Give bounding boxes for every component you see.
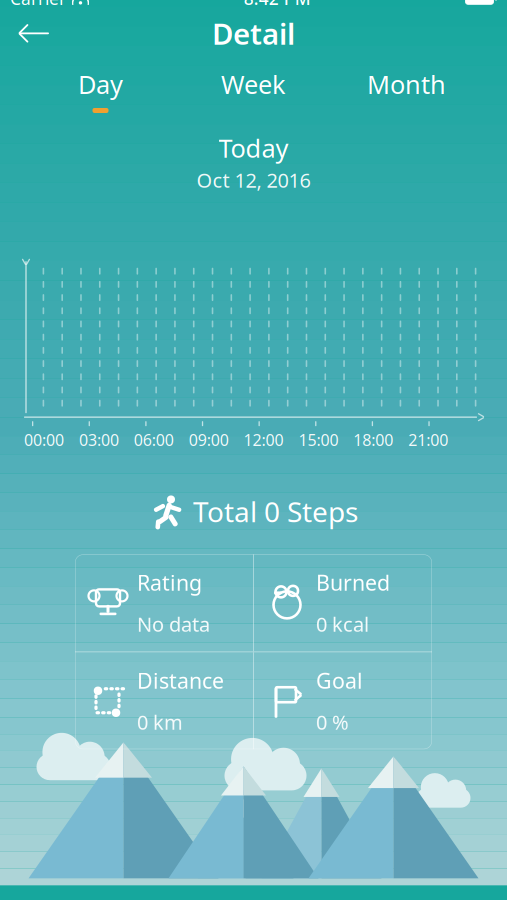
button[interactable]: Burned [254,554,432,651]
staticText: Week [221,67,286,101]
button[interactable]: Month [330,63,483,117]
staticText: 18:00 [353,429,393,450]
button[interactable]: Back [0,12,54,54]
button[interactable]: Goal [254,652,432,749]
staticText: 21:00 [408,429,448,450]
staticText: Distance [137,666,224,695]
staticText: 09:00 [189,429,229,450]
staticText: Month [367,67,446,101]
staticText: 06:00 [134,429,174,450]
staticText: 0 km [137,709,183,735]
staticText: 03:00 [79,429,119,450]
staticText: Goal [316,666,363,695]
staticText: No data [137,611,210,637]
staticText: 12:00 [243,429,283,450]
staticText: 0 kcal [316,611,369,637]
staticText: 15:00 [298,429,338,450]
staticText: Rating [137,568,202,597]
staticText: Burned [316,568,390,597]
staticText: Day [78,67,123,101]
staticText: 8:42 PM [244,0,311,10]
staticText: 0 % [316,709,349,735]
staticText: Carrier [10,0,66,10]
staticText: 00:00 [24,429,64,450]
button[interactable]: Rating [75,554,253,651]
staticText: Today [218,131,288,165]
button[interactable]: Distance [75,652,253,749]
staticText: Detail [212,14,295,53]
button[interactable]: Week [177,63,330,117]
staticText: Total 0 Steps [193,493,358,530]
staticText: Oct 12, 2016 [196,167,310,193]
button[interactable]: Day [24,63,177,117]
